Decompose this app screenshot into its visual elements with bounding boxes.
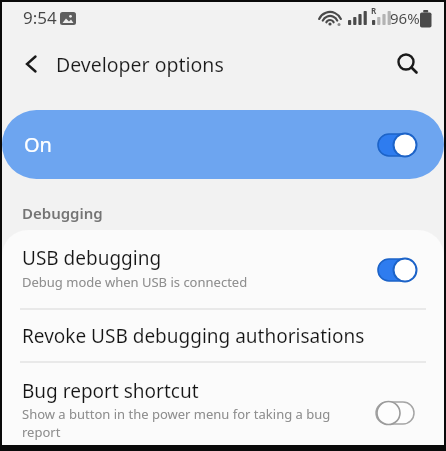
staticText: Debug mode when USB is connected bbox=[22, 273, 248, 291]
button[interactable]: Bug report shortcut bbox=[2, 362, 444, 445]
staticText: 9:54 bbox=[23, 6, 57, 29]
button[interactable] bbox=[390, 46, 426, 82]
button[interactable]: On bbox=[2, 110, 444, 179]
staticText: USB debugging bbox=[22, 245, 162, 271]
staticText: Debugging bbox=[22, 203, 103, 223]
staticText: Revoke USB debugging authorisations bbox=[22, 323, 365, 349]
button[interactable]: Revoke USB debugging authorisations bbox=[2, 310, 444, 361]
staticText: Developer options bbox=[56, 51, 224, 78]
staticText: R bbox=[371, 5, 377, 16]
button[interactable] bbox=[14, 47, 48, 81]
staticText: 96% bbox=[390, 8, 420, 28]
staticText: On bbox=[24, 131, 52, 158]
staticText: Bug report shortcut bbox=[22, 378, 199, 404]
button[interactable]: USB debugging bbox=[2, 230, 444, 309]
staticText: Show a button in the power menu for taki… bbox=[22, 405, 331, 441]
